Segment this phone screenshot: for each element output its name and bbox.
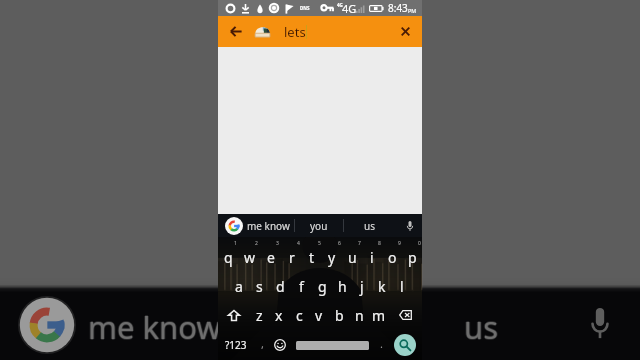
staticText: me know [89, 306, 222, 348]
button[interactable]: 7 [342, 238, 362, 270]
button[interactable]: l [392, 271, 412, 301]
button[interactable]: Backspace [389, 300, 422, 330]
staticText: b [335, 306, 344, 325]
staticText: d [276, 277, 285, 296]
button[interactable]: n [349, 300, 369, 330]
staticText: us [463, 306, 498, 348]
button[interactable]: . [374, 330, 388, 360]
button[interactable]: h [332, 271, 352, 301]
staticText: k [378, 277, 386, 296]
staticText: me know [88, 307, 221, 349]
staticText: 2 [255, 240, 258, 247]
staticText: o [388, 248, 397, 267]
button[interactable]: you [295, 214, 343, 237]
staticText: 6 [338, 240, 341, 247]
staticText: u [348, 248, 357, 267]
button[interactable]: Clear search [390, 16, 420, 47]
staticText: me know [88, 306, 221, 348]
staticText: 3 [276, 240, 279, 247]
staticText: f [299, 277, 304, 296]
button[interactable]: me know [247, 214, 294, 237]
button[interactable]: 3 [260, 238, 281, 270]
staticText: 9 [398, 240, 401, 247]
staticText: 0 [418, 240, 421, 247]
staticText: m [372, 306, 386, 325]
button[interactable]: j [352, 271, 372, 301]
staticText: 7 [358, 240, 361, 247]
staticText: PM [408, 7, 417, 14]
button[interactable]: us [344, 214, 394, 237]
button[interactable]: g [312, 271, 332, 301]
staticText: us [464, 305, 499, 347]
staticText: x [275, 306, 283, 325]
staticText: you [310, 219, 328, 233]
button[interactable]: Voice input [396, 214, 423, 237]
staticText: us [465, 306, 500, 348]
button[interactable]: , [254, 330, 270, 360]
staticText: e [267, 248, 275, 267]
staticText: lets [284, 23, 306, 41]
button[interactable]: 9 [382, 238, 402, 270]
button[interactable]: 8 [362, 238, 382, 270]
staticText: y [328, 248, 336, 267]
staticText: t [309, 248, 315, 267]
staticText: , [261, 336, 264, 351]
staticText: 4G [337, 2, 343, 8]
staticText: ?123 [225, 338, 247, 352]
staticText: 8:43 [388, 1, 408, 15]
button[interactable]: v [309, 300, 329, 330]
staticText: i [370, 248, 374, 267]
staticText: c [296, 306, 303, 325]
staticText: l [400, 277, 404, 296]
button[interactable]: Back [222, 16, 249, 47]
staticText: me know [247, 219, 290, 233]
button[interactable]: s [249, 271, 270, 301]
staticText: 8 [378, 240, 381, 247]
staticText: us [464, 306, 499, 348]
staticText: me know [88, 305, 221, 347]
button[interactable]: Google [225, 217, 243, 235]
button[interactable]: b [329, 300, 349, 330]
button[interactable]: f [291, 271, 312, 301]
button[interactable]: a [228, 271, 249, 301]
button[interactable]: k [372, 271, 392, 301]
button[interactable]: 1 [218, 238, 239, 270]
staticText: us [364, 219, 375, 233]
staticText: v [315, 306, 323, 325]
button[interactable]: Search [388, 330, 422, 360]
button[interactable]: z [250, 300, 269, 330]
button[interactable]: Emoji [270, 330, 290, 360]
button[interactable]: c [289, 300, 309, 330]
button[interactable]: 4 [281, 238, 302, 270]
button[interactable]: ?123 [218, 330, 254, 360]
staticText: 5 [318, 240, 321, 247]
staticText: us [464, 307, 499, 349]
button[interactable]: Space [290, 330, 374, 360]
button[interactable]: d [270, 271, 291, 301]
staticText: h [338, 277, 347, 296]
button[interactable]: 2 [239, 238, 260, 270]
staticText: s [256, 277, 263, 296]
button[interactable]: 0 [402, 238, 422, 270]
staticText: j [360, 277, 364, 296]
staticText: . [380, 336, 383, 351]
staticText: me know [87, 306, 220, 348]
button[interactable]: Shift [218, 300, 250, 330]
button[interactable]: m [369, 300, 389, 330]
staticText: r [289, 248, 295, 267]
staticText: n [355, 306, 364, 325]
staticText: DNS [300, 5, 310, 11]
staticText: 1 [234, 240, 237, 247]
staticText: z [256, 306, 263, 325]
staticText: w [244, 248, 256, 267]
staticText: q [224, 248, 233, 267]
staticText: 4G [342, 1, 357, 16]
staticText: a [235, 277, 243, 296]
button[interactable]: 5 [302, 238, 322, 270]
staticText: g [318, 277, 327, 296]
button[interactable]: 6 [322, 238, 342, 270]
staticText: p [408, 248, 417, 267]
staticText: 4 [297, 240, 300, 247]
button[interactable]: x [269, 300, 289, 330]
